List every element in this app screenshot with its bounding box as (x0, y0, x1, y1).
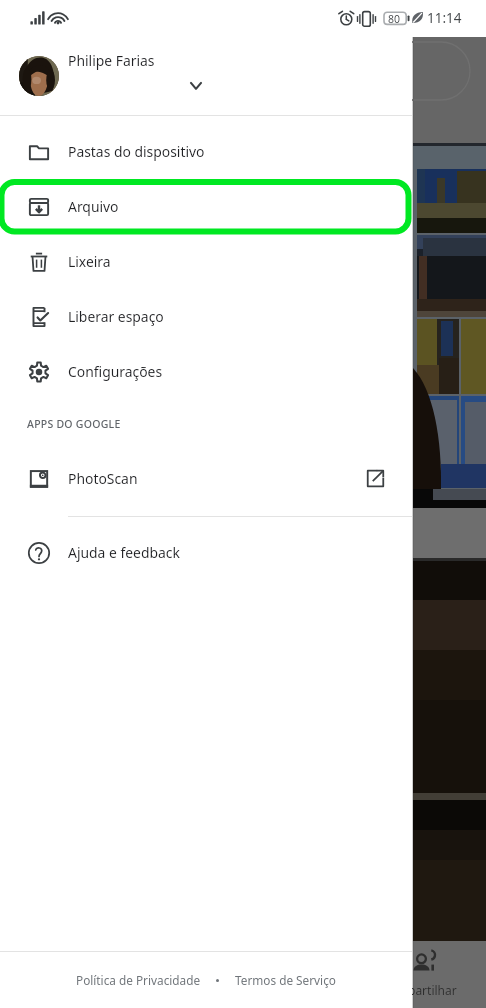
staticText: Pastas do dispositivo (68, 142, 205, 161)
button[interactable]: Lixeira (0, 234, 412, 289)
staticText: partilhar (408, 982, 457, 998)
staticText: 80 (388, 12, 401, 26)
button[interactable]: Arquivo (0, 179, 412, 234)
button[interactable]: Philipe Farias (0, 36, 412, 115)
button[interactable]: Mostrar mais contas (182, 73, 210, 101)
button[interactable]: Política de Privacidade (76, 972, 201, 988)
button[interactable]: PhotoScan (0, 451, 412, 506)
staticText: Ajuda e feedback (68, 543, 180, 562)
staticText: Philipe Farias (68, 51, 155, 70)
button[interactable]: Ajuda e feedback (0, 525, 412, 580)
staticText: PhotoScan (68, 469, 138, 488)
staticText: APPS DO GOOGLE (27, 417, 121, 431)
staticText: Arquivo (68, 197, 119, 216)
staticText: Liberar espaço (68, 307, 164, 326)
button[interactable]: Termos de Serviço (235, 972, 336, 988)
staticText: Configurações (68, 362, 163, 381)
staticText: 11:14 (427, 9, 462, 27)
button[interactable]: Liberar espaço (0, 289, 412, 344)
staticText: Lixeira (68, 252, 111, 271)
other: Abrir o PhotoScan (365, 468, 386, 489)
button[interactable]: Pastas do dispositivo (0, 124, 412, 179)
button[interactable]: Configurações (0, 344, 412, 399)
